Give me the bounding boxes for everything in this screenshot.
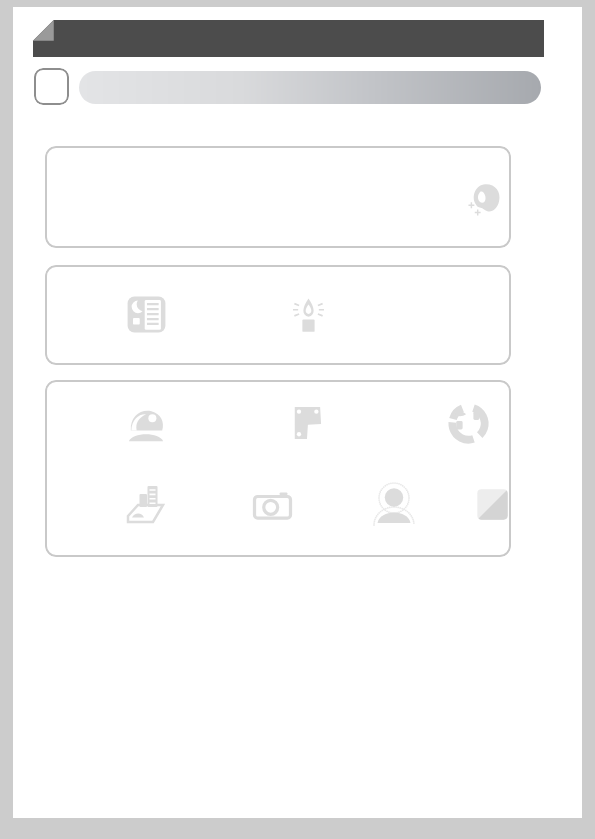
button[interactable]: Contrast	[472, 484, 511, 525]
button[interactable]: Bracket effect	[283, 399, 330, 446]
button[interactable]: Documents section	[45, 265, 511, 365]
button[interactable]: Portrait section	[45, 146, 511, 248]
button[interactable]: Night document	[124, 292, 169, 337]
button[interactable]: Search field	[79, 71, 541, 104]
button[interactable]: Person blur	[369, 479, 419, 529]
button[interactable]: Title banner	[33, 20, 544, 57]
button[interactable]: City view	[121, 479, 171, 529]
button[interactable]: Portrait retouch	[463, 178, 505, 220]
button[interactable]: Effects section	[45, 380, 511, 557]
button[interactable]: Candle light	[285, 290, 332, 337]
button[interactable]: Menu	[34, 68, 69, 105]
button[interactable]: Ring effect	[444, 399, 493, 448]
button[interactable]: Camera	[250, 483, 295, 528]
button[interactable]: Bird effect	[122, 401, 171, 450]
